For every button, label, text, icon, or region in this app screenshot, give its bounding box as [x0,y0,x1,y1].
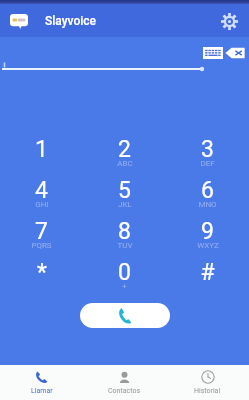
staticText: JKL [118,200,132,209]
staticText: 7 [35,218,48,245]
button[interactable]: * [0,252,83,293]
button[interactable]: Contactos [83,365,166,400]
staticText: Historial [194,387,221,395]
button[interactable]: Slayvoice logo [9,11,28,31]
staticText: Slayvoice [45,14,97,28]
button[interactable]: 9 [166,211,249,252]
staticText: 3 [201,136,214,163]
button[interactable]: Historial [166,365,249,400]
staticText: 0 [118,259,131,286]
staticText: MNO [198,200,217,209]
staticText: 5 [118,177,131,204]
button[interactable]: 2 [83,129,166,170]
staticText: 6 [201,177,214,204]
staticText: ABC [117,159,133,168]
staticText: 9 [201,218,214,245]
button[interactable]: 8 [83,211,166,252]
staticText: 1 [35,136,48,163]
staticText: Contactos [108,387,141,395]
staticText: DEF [200,159,215,168]
button[interactable]: 0 [83,252,166,293]
staticText: TUV [117,241,133,250]
button[interactable]: 4 [0,170,83,211]
button[interactable]: # [166,252,249,293]
staticText: 4 [35,177,48,204]
staticText: * [37,259,47,286]
button[interactable]: Keyboard [203,47,223,59]
button[interactable]: 7 [0,211,83,252]
staticText: + [122,282,127,291]
staticText: GHI [35,200,49,209]
button[interactable]: 5 [83,170,166,211]
staticText: 8 [118,218,131,245]
button[interactable]: 3 [166,129,249,170]
staticText: # [200,259,215,286]
button[interactable]: Backspace [225,47,245,59]
staticText: 2 [118,136,131,163]
button[interactable]: Llamar [0,365,83,400]
staticText: PQRS [31,241,52,250]
button[interactable]: Call [80,303,170,328]
button[interactable]: Settings [218,10,240,32]
button[interactable]: 1 [0,129,83,170]
button[interactable]: 6 [166,170,249,211]
staticText: Llamar [31,387,53,395]
staticText: WXYZ [197,241,219,250]
